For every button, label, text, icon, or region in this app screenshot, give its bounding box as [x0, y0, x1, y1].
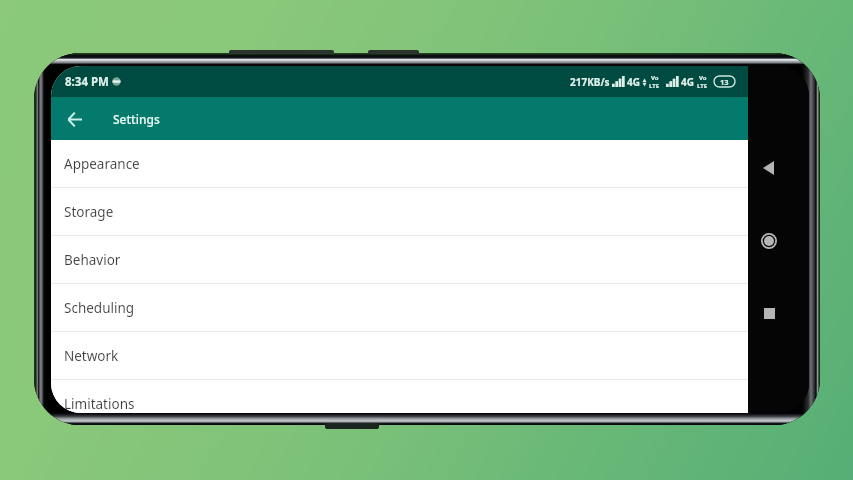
button[interactable]: Scheduling	[51, 284, 748, 332]
staticText: Network	[64, 347, 119, 365]
staticText: Settings	[113, 111, 160, 127]
staticText: Appearance	[64, 155, 140, 173]
staticText: Storage	[64, 203, 114, 221]
button[interactable]: Storage	[51, 188, 748, 236]
button[interactable]: Behavior	[51, 236, 748, 284]
staticText: Scheduling	[64, 299, 135, 317]
button[interactable]: Appearance	[51, 140, 748, 188]
staticText: 217KB/s	[570, 75, 610, 89]
button[interactable]: Network	[51, 332, 748, 380]
button[interactable]: Back	[56, 101, 92, 137]
staticText: 4G	[627, 75, 640, 89]
button[interactable]: Limitations	[51, 380, 748, 413]
staticText: LTE	[649, 82, 660, 90]
button[interactable]: Recent apps	[752, 296, 786, 330]
staticText: Vo	[699, 74, 707, 82]
staticText: 13	[720, 77, 729, 87]
button[interactable]: Back	[751, 151, 785, 185]
staticText: Limitations	[64, 395, 135, 413]
staticText: Behavior	[64, 251, 121, 269]
staticText: 8:34 PM	[65, 74, 109, 90]
staticText: 4G	[681, 75, 694, 89]
button[interactable]: Home	[752, 224, 786, 258]
staticText: Vo	[651, 74, 659, 82]
staticText: LTE	[697, 82, 708, 90]
